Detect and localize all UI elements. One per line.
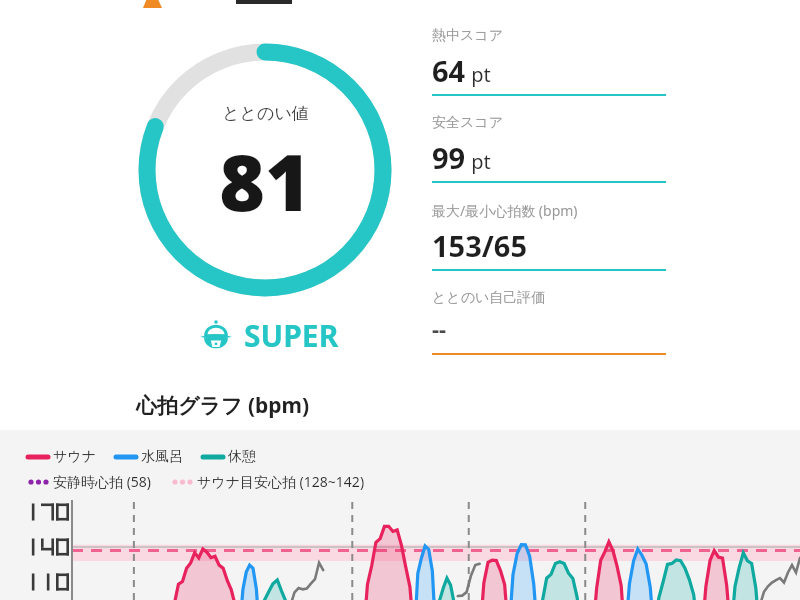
staticText: pt (466, 61, 491, 88)
staticText: 99 (432, 138, 466, 177)
staticText: ととのい自己評価 (432, 289, 546, 307)
staticText: pt (466, 148, 491, 175)
staticText: サウナ目安心拍 (128~142) (197, 472, 365, 491)
staticText: 64 (432, 51, 466, 90)
staticText: 安静時心拍 (58) (53, 472, 152, 491)
button[interactable]: 最大/最小心拍数 (bpm) (432, 201, 666, 271)
other: ととのい値 81 SUPER (0, 0, 800, 600)
button[interactable]: ととのい自己評価 (432, 289, 666, 355)
button[interactable] (0, 0, 800, 14)
staticText: 153/65 (432, 226, 527, 265)
staticText: 水風呂 (141, 448, 183, 466)
staticText: サウナ (53, 448, 96, 466)
button[interactable]: 熱中スコア (432, 27, 666, 96)
staticText: 休憩 (228, 448, 256, 466)
staticText: 安全スコア (432, 114, 503, 132)
staticText: 最大/最小心拍数 (bpm) (432, 201, 578, 220)
staticText: 心拍グラフ (bpm) (136, 391, 310, 420)
button[interactable]: 安全スコア (432, 114, 666, 183)
staticText: 熱中スコア (432, 27, 503, 45)
staticText: -- (432, 313, 447, 343)
button[interactable]: サウナ (0, 430, 800, 600)
button[interactable]: SUPER (196, 312, 339, 358)
staticText: SUPER (244, 315, 339, 356)
staticText: 81 (219, 128, 311, 234)
staticText: ととのい値 (222, 103, 309, 124)
